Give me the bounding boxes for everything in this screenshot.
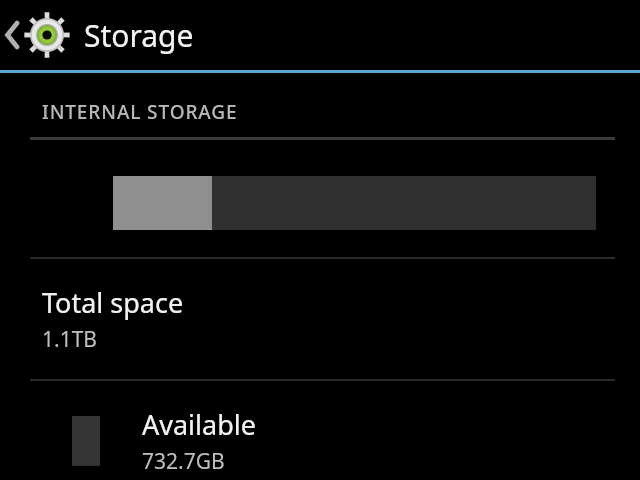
- staticText: 732.7GB: [142, 447, 225, 476]
- staticText: INTERNAL STORAGE: [42, 99, 238, 125]
- button[interactable]: Available: [0, 381, 640, 480]
- staticText: Total space: [42, 284, 184, 321]
- button[interactable]: Navigate up: [0, 0, 76, 70]
- staticText: 1.1TB: [42, 325, 97, 354]
- staticText: Available: [142, 406, 256, 443]
- button[interactable]: Total space: [0, 259, 640, 379]
- staticText: Storage: [84, 15, 194, 56]
